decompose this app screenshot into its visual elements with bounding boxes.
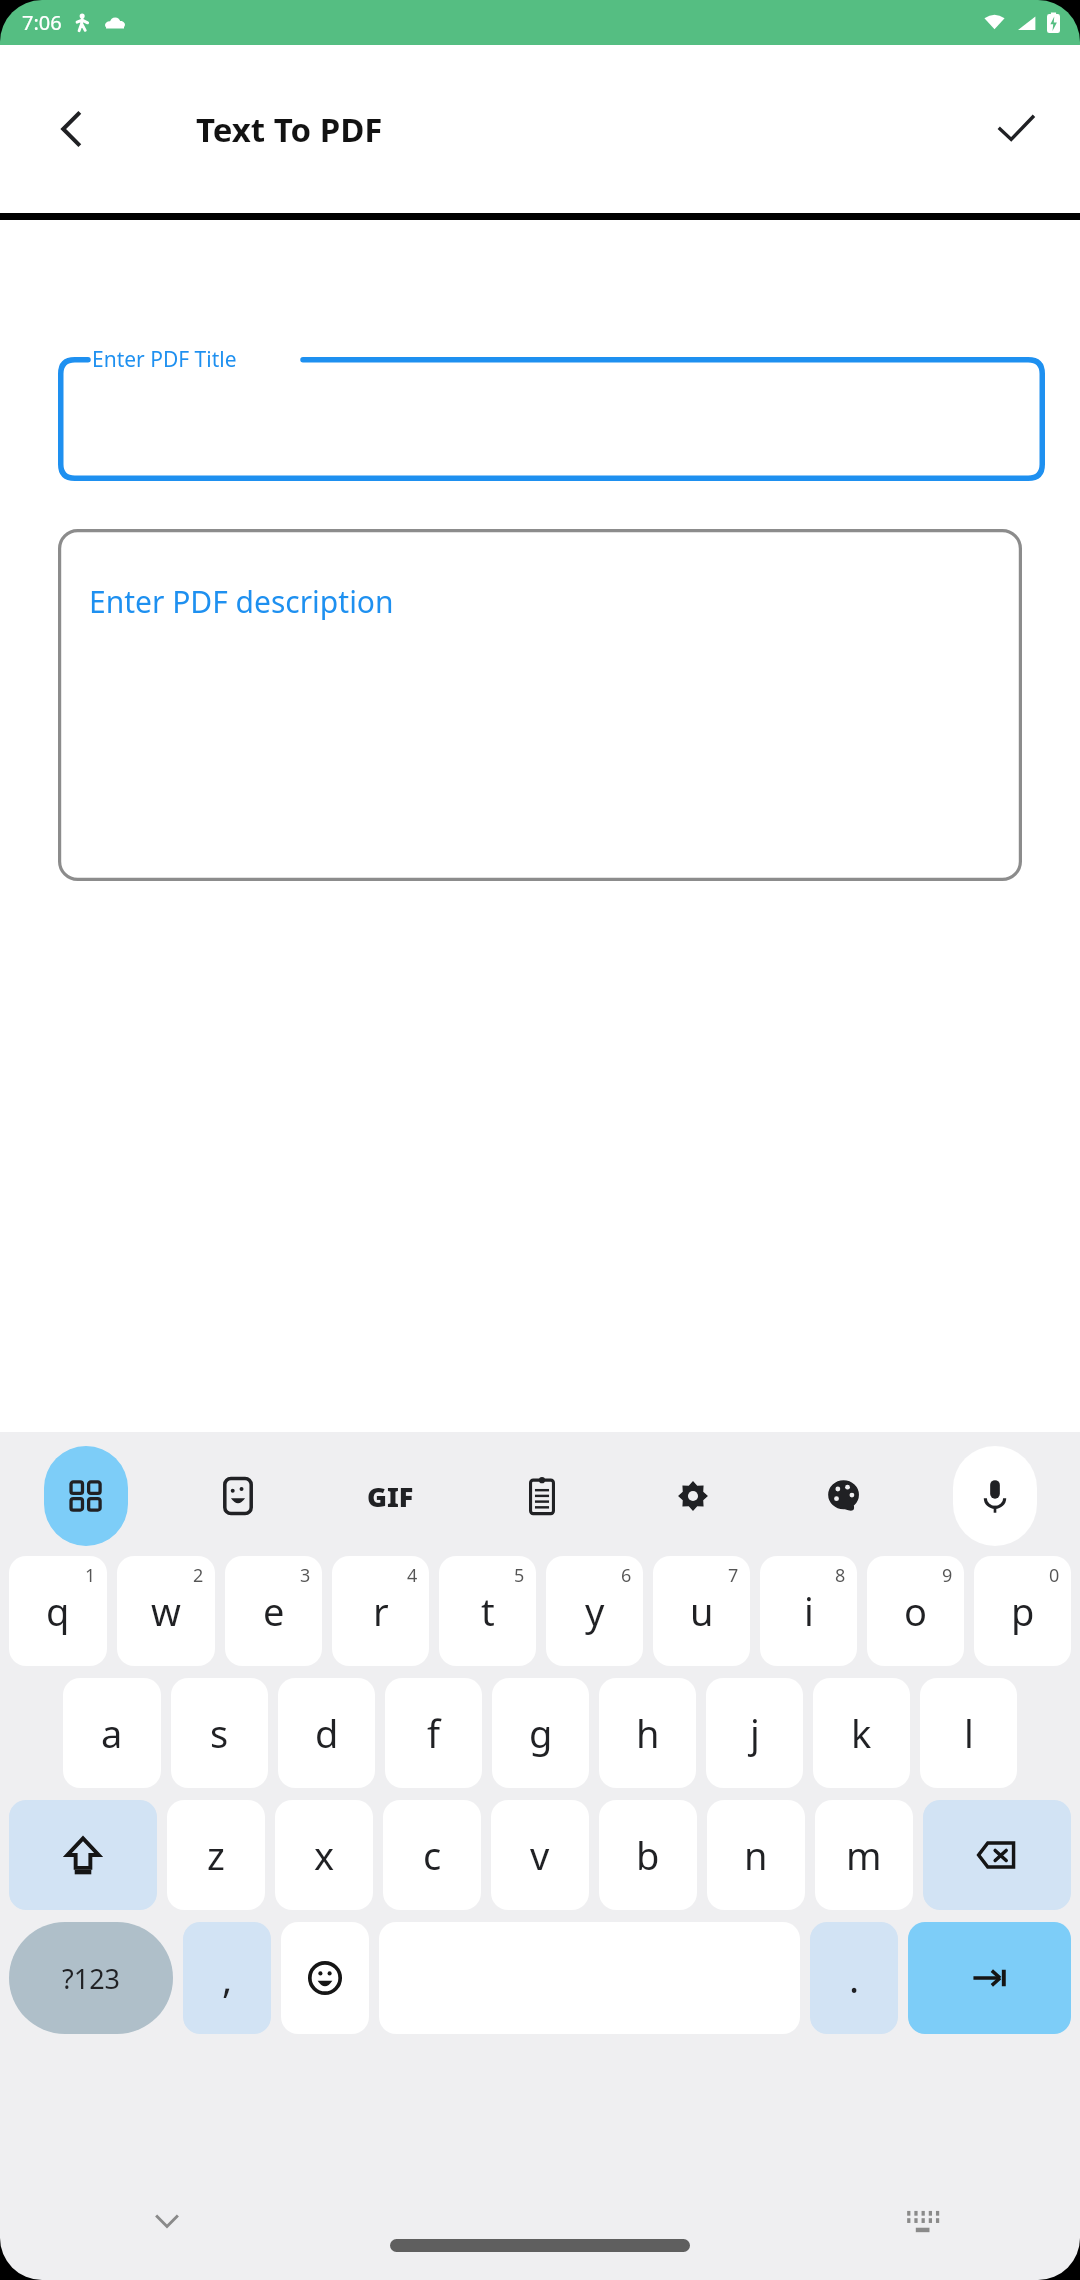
button[interactable]: f [385,1678,482,1788]
button[interactable]: grid [44,1446,128,1546]
button[interactable]: r [332,1556,429,1666]
button[interactable]: x [275,1800,373,1910]
button[interactable]: k [813,1678,910,1788]
button[interactable]: o [867,1556,964,1666]
staticText: p [1011,1585,1035,1637]
staticText: . [849,1952,860,2004]
button[interactable]: gif [348,1446,432,1546]
staticText: e [263,1585,285,1637]
staticText: u [690,1585,714,1637]
staticText: 5 [514,1563,525,1588]
staticText: k [851,1707,872,1759]
button[interactable]: a [63,1678,161,1788]
button[interactable]: p [974,1556,1071,1666]
button[interactable]: v [491,1800,589,1910]
staticText: h [636,1707,660,1759]
button[interactable]: l [920,1678,1017,1788]
button[interactable]: , [183,1922,271,2034]
staticText: t [481,1585,495,1637]
staticText: i [804,1585,814,1637]
staticText: s [210,1707,229,1759]
staticText: b [636,1829,660,1881]
button[interactable]: y [546,1556,643,1666]
staticText: d [315,1707,339,1759]
staticText: ?123 [62,1960,121,1997]
staticText: 7 [728,1563,739,1588]
staticText: w [151,1585,181,1637]
button[interactable]: u [653,1556,750,1666]
button[interactable]: Backspace [923,1800,1071,1910]
staticText: m [846,1829,882,1881]
staticText: 0 [1049,1563,1060,1588]
button[interactable]: Switch keyboard [888,2186,958,2256]
button[interactable]: Shift [9,1800,157,1910]
staticText: 2 [193,1563,204,1588]
staticText: GIF [367,1478,414,1515]
button[interactable]: t [439,1556,536,1666]
button[interactable]: Emoji [281,1922,369,2034]
button[interactable] [58,357,1045,481]
staticText: o [904,1585,927,1637]
button[interactable]: Enter [908,1922,1071,2034]
staticText: n [744,1829,768,1881]
staticText: , [222,1952,233,2004]
button[interactable]: m [815,1800,913,1910]
staticText: 8 [835,1563,846,1588]
staticText: 7:06 [22,9,62,36]
button[interactable]: Back [36,93,108,165]
staticText: v [530,1829,550,1881]
button[interactable]: w [117,1556,215,1666]
staticText: a [101,1707,123,1759]
button[interactable]: settings [651,1446,735,1546]
staticText: 3 [300,1563,311,1588]
button[interactable]: i [760,1556,857,1666]
button[interactable]: q [9,1556,107,1666]
button[interactable]: n [707,1800,805,1910]
button[interactable]: c [383,1800,481,1910]
staticText: 4 [407,1563,418,1588]
button[interactable]: Enter PDF description [58,529,1022,881]
staticText: 1 [85,1563,96,1588]
staticText: 6 [621,1563,632,1588]
button[interactable]: Voice input [953,1446,1037,1546]
button[interactable]: Save [980,93,1052,165]
button[interactable]: h [599,1678,696,1788]
staticText: l [964,1707,974,1759]
button[interactable]: b [599,1800,697,1910]
button[interactable]: sticker [196,1446,280,1546]
staticText: r [373,1585,389,1637]
button[interactable]: j [706,1678,803,1788]
staticText: x [314,1829,335,1881]
staticText: z [207,1829,225,1881]
staticText: c [423,1829,442,1881]
button[interactable]: d [278,1678,375,1788]
button[interactable]: e [225,1556,322,1666]
button[interactable]: ?123 [9,1922,173,2034]
staticText: q [46,1585,70,1637]
staticText: 9 [942,1563,953,1588]
button[interactable]: clipboard [500,1446,584,1546]
button[interactable]: Hide keyboard [132,2186,202,2256]
staticText: g [529,1707,553,1759]
staticText: Text To PDF [196,107,383,152]
button[interactable]: . [810,1922,898,2034]
staticText: j [750,1707,760,1759]
button[interactable]: z [167,1800,265,1910]
staticText: y [585,1585,605,1637]
staticText: f [427,1707,441,1759]
button[interactable]: Home [390,2239,690,2252]
button[interactable]: s [171,1678,268,1788]
staticText: Enter PDF Title [92,345,237,374]
button[interactable]: palette [802,1446,886,1546]
button[interactable]: g [492,1678,589,1788]
staticText: Enter PDF description [89,581,394,622]
